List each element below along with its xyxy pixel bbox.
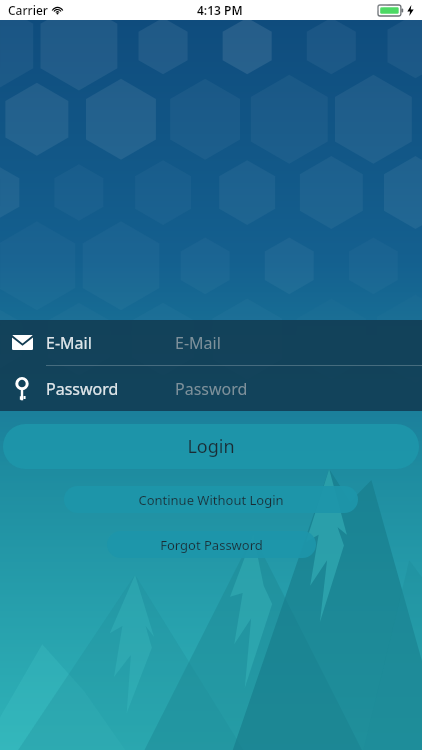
staticText: Carrier — [8, 2, 48, 18]
button[interactable]: E-Mail — [0, 320, 422, 365]
other: Password — [12, 379, 32, 399]
staticText: Password — [46, 378, 175, 400]
staticText: Login — [187, 434, 235, 459]
other: E-Mail — [12, 335, 33, 350]
staticText: 4:13 PM — [197, 2, 243, 18]
staticText: Continue Without Login — [138, 491, 284, 509]
staticText: E-Mail — [175, 332, 221, 354]
staticText: E-Mail — [46, 332, 175, 354]
button[interactable]: Forgot Password — [107, 531, 316, 558]
staticText: Password — [175, 378, 248, 400]
staticText: Forgot Password — [160, 536, 263, 554]
button[interactable]: Continue Without Login — [64, 486, 358, 513]
button[interactable]: Password — [0, 366, 422, 411]
button[interactable]: Login — [3, 424, 419, 469]
